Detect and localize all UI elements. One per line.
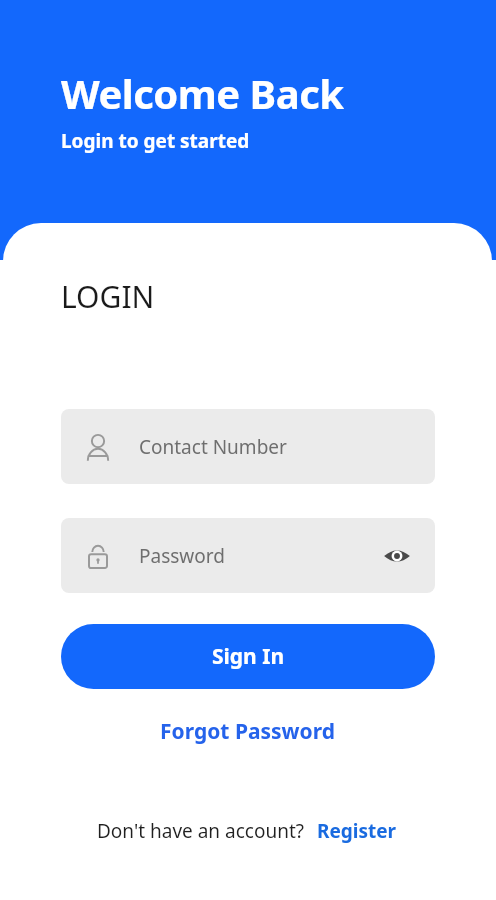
button[interactable]: Contact	[61, 409, 435, 484]
staticText: Contact Number	[139, 434, 287, 460]
staticText: LOGIN	[61, 276, 155, 317]
staticText: Login to get started	[61, 128, 250, 154]
staticText: Forgot Password	[160, 717, 335, 746]
button[interactable]: Register	[315, 814, 399, 848]
other: Password	[83, 541, 113, 571]
button[interactable]: Forgot Password	[148, 711, 347, 752]
staticText: Password	[139, 543, 225, 569]
button[interactable]: Show password	[381, 540, 413, 572]
other: Contact	[83, 432, 113, 462]
staticText: Welcome Back	[61, 66, 344, 120]
staticText: Don't have an account?	[97, 818, 305, 844]
button[interactable]: Sign In	[61, 624, 435, 689]
staticText: Register	[317, 818, 397, 844]
staticText: Sign In	[212, 642, 285, 671]
button[interactable]: Password	[61, 518, 435, 593]
